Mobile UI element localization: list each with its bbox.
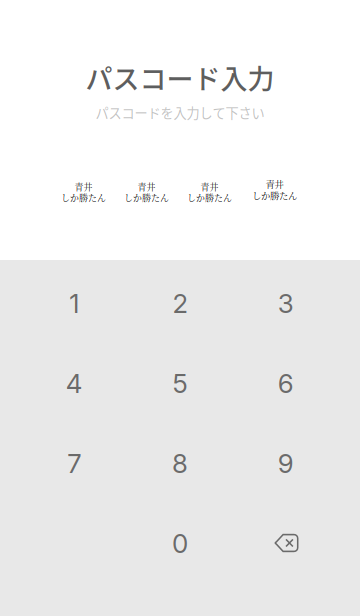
staticText: しか勝たん xyxy=(124,191,169,204)
staticText: 1 xyxy=(69,288,79,319)
staticText: 9 xyxy=(278,448,294,479)
button[interactable]: 6 xyxy=(233,343,339,423)
staticText: 5 xyxy=(172,368,187,399)
button[interactable]: 9 xyxy=(233,423,339,503)
staticText: 3 xyxy=(278,288,294,319)
button[interactable]: 7 xyxy=(21,423,127,503)
button[interactable]: 3 xyxy=(233,263,339,343)
button[interactable]: 8 xyxy=(127,423,233,503)
staticText: 6 xyxy=(278,368,294,399)
button[interactable]: 4 xyxy=(21,343,127,423)
staticText: 青井 xyxy=(265,177,283,191)
button[interactable]: 2 xyxy=(127,263,233,343)
button[interactable]: 5 xyxy=(127,343,233,423)
staticText: しか勝たん xyxy=(252,188,297,202)
staticText: 2 xyxy=(172,288,187,319)
staticText: パスコードを入力して下さい xyxy=(95,103,264,122)
button[interactable]: 0 xyxy=(127,503,233,583)
staticText: 7 xyxy=(67,448,81,479)
staticText: しか勝たん xyxy=(187,191,232,204)
staticText: 8 xyxy=(172,448,188,479)
staticText: パスコード入力 xyxy=(85,58,274,97)
staticText: 青井 xyxy=(74,180,92,193)
staticText: しか勝たん xyxy=(61,191,106,204)
staticText: 4 xyxy=(66,368,83,399)
button[interactable]: 1 xyxy=(21,263,127,343)
staticText: 青井 xyxy=(200,180,218,193)
staticText: 青井 xyxy=(137,180,155,193)
button[interactable]: Delete xyxy=(233,503,339,583)
staticText: 0 xyxy=(172,528,188,559)
